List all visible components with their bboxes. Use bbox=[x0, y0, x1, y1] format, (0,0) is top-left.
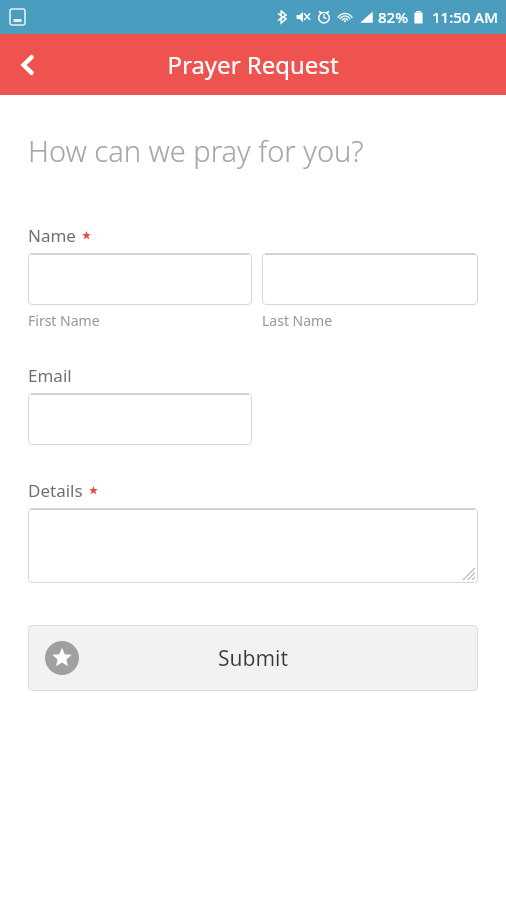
staticText: Name bbox=[28, 224, 76, 247]
staticText: 82% bbox=[378, 7, 408, 27]
staticText: Last Name bbox=[262, 311, 333, 330]
button[interactable] bbox=[28, 253, 252, 305]
staticText: How can we pray for you? bbox=[28, 131, 364, 170]
staticText: Prayer Request bbox=[0, 48, 506, 81]
staticText: Submit bbox=[218, 644, 289, 673]
button[interactable] bbox=[28, 393, 252, 445]
button[interactable]: Back bbox=[0, 37, 56, 93]
staticText: First Name bbox=[28, 311, 100, 330]
staticText: Details bbox=[28, 479, 83, 502]
button[interactable] bbox=[262, 253, 478, 305]
staticText: Email bbox=[28, 364, 72, 387]
staticText: 11:50 AM bbox=[432, 7, 498, 27]
button[interactable]: Submit bbox=[28, 625, 478, 691]
button[interactable] bbox=[28, 508, 478, 583]
